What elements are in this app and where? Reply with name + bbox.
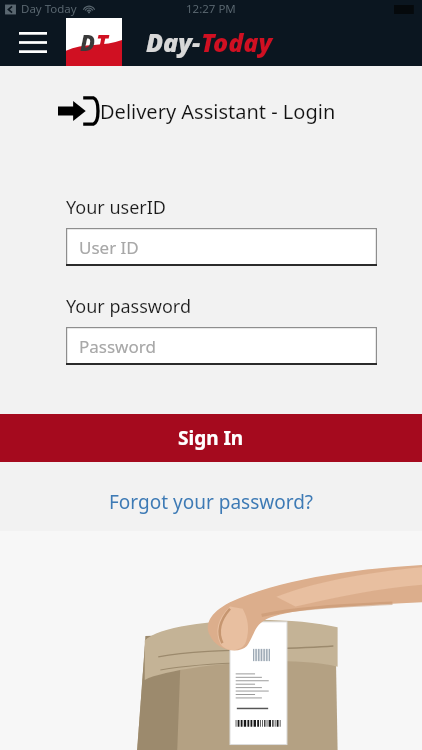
staticText: Your password: [66, 294, 192, 319]
staticText: Day-: [146, 25, 201, 59]
staticText: Forgot your password?: [109, 489, 314, 515]
staticText: Delivery Assistant - Login: [100, 98, 336, 125]
staticText: Your userID: [66, 195, 166, 220]
staticText: Today: [201, 25, 273, 59]
staticText: 12:27 PM: [186, 1, 236, 17]
staticText: User ID: [79, 236, 139, 259]
staticText: T: [96, 27, 109, 57]
button[interactable]: Password: [66, 327, 377, 365]
staticText: Password: [79, 335, 156, 358]
button[interactable]: Forgot your password?: [109, 489, 314, 515]
staticText: D: [80, 27, 96, 57]
staticText: Sign In: [178, 425, 244, 451]
button[interactable]: Sign In: [0, 414, 422, 462]
button[interactable]: Menu: [16, 25, 50, 59]
staticText: Day Today: [21, 1, 77, 17]
button[interactable]: User ID: [66, 228, 377, 266]
